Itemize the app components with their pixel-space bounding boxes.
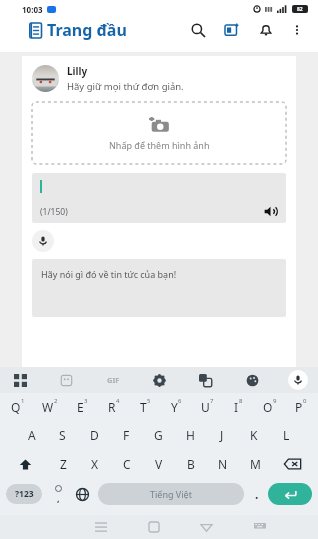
staticText: 9 [273, 397, 277, 405]
button[interactable]: Settings [149, 370, 169, 390]
button[interactable]: H [174, 427, 206, 443]
staticText: X [91, 456, 99, 472]
button[interactable]: L [270, 427, 302, 443]
staticText: 7 [210, 397, 214, 405]
button[interactable]: Voice typing [288, 370, 308, 390]
button[interactable]: ?123 [6, 484, 42, 504]
button[interactable]: W [34, 399, 66, 415]
button[interactable]: I [223, 399, 254, 415]
staticText: V [155, 456, 163, 472]
button[interactable]: Hãy nói gì đó về tin tức của bạn! [32, 259, 286, 317]
button[interactable]: N [207, 456, 239, 472]
staticText: F [123, 427, 130, 443]
staticText: . [255, 486, 259, 502]
staticText: 3 [84, 397, 88, 405]
staticText: GIF [107, 375, 120, 385]
button[interactable]: Shift [4, 458, 47, 471]
button[interactable]: Menu [74, 523, 127, 532]
staticText: Q [11, 399, 21, 415]
button[interactable]: R [98, 399, 130, 415]
button[interactable]: Y [161, 399, 192, 415]
button[interactable]: Back [180, 522, 233, 533]
button[interactable]: P [285, 399, 316, 415]
staticText: T [140, 399, 147, 415]
staticText: 5 [147, 397, 151, 405]
button[interactable]: Notifications [254, 18, 278, 42]
button[interactable]: C [111, 456, 143, 472]
button[interactable]: K [238, 427, 270, 443]
staticText: U [201, 399, 210, 415]
staticText: Z [60, 456, 67, 472]
staticText: R [108, 399, 116, 415]
button[interactable]: Add image [32, 102, 286, 164]
button[interactable]: Change language [72, 484, 92, 504]
staticText: 8 [239, 397, 243, 405]
button[interactable]: X [79, 456, 111, 472]
staticText: 6 [178, 397, 182, 405]
staticText: Y [171, 399, 178, 415]
button[interactable]: U [192, 399, 223, 415]
button[interactable]: More options [286, 19, 308, 41]
staticText: Lilly [67, 64, 88, 78]
staticText: I [234, 399, 239, 415]
button[interactable]: Z [47, 456, 79, 472]
staticText: W [42, 399, 54, 415]
staticText: J [220, 427, 224, 443]
button[interactable]: Theme [242, 370, 262, 390]
button[interactable]: Enter [268, 483, 312, 505]
staticText: 1 [21, 397, 25, 405]
staticText: 10:03 [22, 4, 43, 15]
staticText: C [123, 456, 131, 472]
button[interactable]: G [142, 427, 174, 443]
button[interactable]: Emoji [48, 484, 68, 504]
staticText: S [59, 427, 66, 443]
staticText: M [250, 456, 261, 472]
button[interactable]: E [66, 399, 98, 415]
staticText: (1/150) [40, 206, 68, 218]
button[interactable]: . [250, 486, 264, 502]
staticText: L [283, 427, 290, 443]
staticText: 2 [54, 397, 58, 405]
button[interactable]: Apps [10, 370, 30, 390]
staticText: N [218, 456, 228, 472]
button[interactable]: F [110, 427, 142, 443]
button[interactable]: GIF [103, 370, 123, 390]
button[interactable]: Hide keyboard [233, 523, 286, 532]
button[interactable]: Backspace [271, 458, 314, 470]
button[interactable]: B [175, 456, 207, 472]
button[interactable]: Home [127, 522, 180, 532]
staticText: , [57, 492, 60, 504]
button[interactable]: (1/150) [32, 173, 286, 223]
button[interactable]: M [239, 456, 271, 472]
staticText: K [250, 427, 258, 443]
staticText: 82 [297, 6, 303, 13]
staticText: G [154, 427, 163, 443]
button[interactable]: T [130, 399, 161, 415]
staticText: 4 [116, 397, 120, 405]
staticText: Tiếng Việt [150, 488, 192, 500]
button[interactable]: Stickers [56, 370, 76, 390]
button[interactable]: V [143, 456, 175, 472]
staticText: O [263, 399, 273, 415]
staticText: P [295, 399, 303, 415]
button[interactable]: Lilly [32, 64, 286, 93]
button[interactable]: New post [220, 18, 244, 42]
staticText: ?123 [15, 488, 34, 500]
button[interactable]: Search [186, 18, 210, 42]
button[interactable]: Text to speech [262, 203, 278, 219]
button[interactable]: Q [2, 399, 34, 415]
staticText: D [90, 427, 99, 443]
button[interactable]: S [47, 427, 78, 443]
staticText: B [187, 456, 195, 472]
button[interactable]: D [78, 427, 110, 443]
staticText: Trang đầu [47, 19, 127, 41]
button[interactable]: J [206, 427, 238, 443]
button[interactable]: A [16, 427, 47, 443]
button[interactable]: Tiếng Việt [98, 483, 244, 505]
staticText: Hãy nói gì đó về tin tức của bạn! [41, 268, 177, 280]
button[interactable]: Translate [195, 370, 215, 390]
button[interactable]: Voice input [32, 230, 54, 252]
button[interactable]: O [254, 399, 285, 415]
staticText: H [186, 427, 195, 443]
staticText: A [28, 427, 36, 443]
